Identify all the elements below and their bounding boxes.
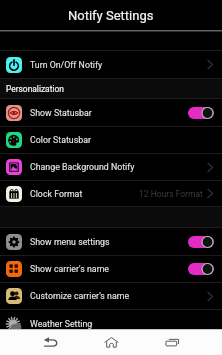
button[interactable]: Customize carrier's name: [0, 283, 222, 309]
button[interactable]: Turn On/Off Notify: [0, 51, 222, 78]
button[interactable]: Show Statusbar: [0, 99, 222, 126]
staticText: Change Background Notify: [30, 162, 135, 172]
button[interactable]: Show menu settings: [0, 228, 222, 255]
staticText: Customize carrier's name: [30, 291, 130, 301]
button[interactable]: Color Statusbar: [0, 127, 222, 153]
button[interactable]: Clock Format: [0, 181, 222, 206]
button[interactable]: [188, 236, 214, 248]
button[interactable]: Show carrier's name: [0, 256, 222, 282]
button[interactable]: [188, 263, 214, 275]
button[interactable]: [188, 107, 214, 119]
staticText: Personalization: [6, 84, 64, 94]
staticText: 12 Hours Format: [139, 189, 203, 199]
staticText: Notify Settings: [68, 8, 154, 23]
staticText: Show menu settings: [30, 237, 110, 247]
staticText: Color Statusbar: [30, 135, 91, 145]
staticText: Clock Format: [30, 189, 83, 199]
staticText: Show carrier's name: [30, 264, 110, 274]
staticText: Turn On/Off Notify: [30, 60, 103, 70]
button[interactable]: Home: [81, 329, 142, 355]
staticText: Weather Setting: [30, 319, 93, 329]
button[interactable]: Weather Setting: [0, 310, 222, 337]
staticText: Show Statusbar: [30, 108, 92, 118]
button[interactable]: Recent apps: [142, 329, 203, 355]
button[interactable]: Change Background Notify: [0, 154, 222, 180]
button[interactable]: Back: [20, 329, 81, 355]
